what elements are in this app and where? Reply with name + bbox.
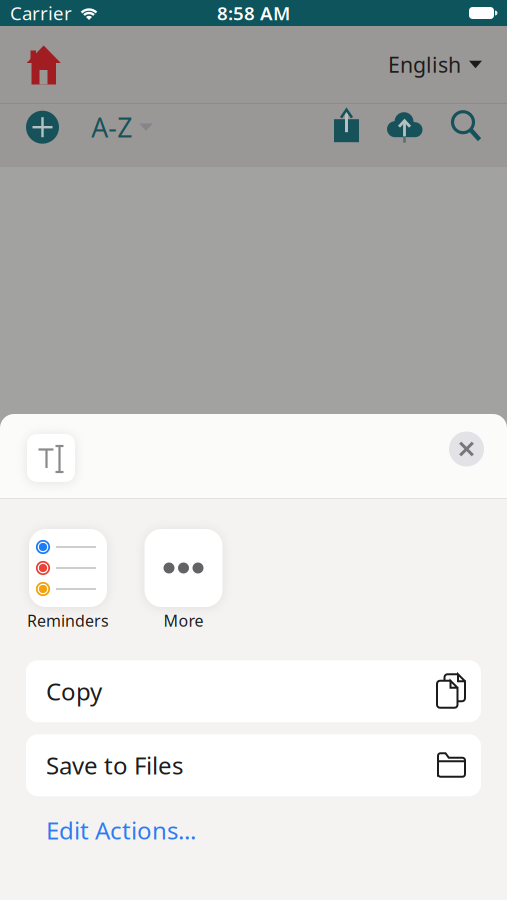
staticText: Reminders <box>27 610 109 631</box>
staticText: 8:58 AM <box>217 1 290 25</box>
button[interactable]: Reminders <box>27 529 109 631</box>
staticText: More <box>163 610 203 631</box>
staticText: Copy <box>46 675 102 707</box>
button[interactable]: Edit Actions... <box>46 814 196 846</box>
button[interactable]: Upload <box>386 111 424 143</box>
staticText: Edit Actions... <box>46 814 196 846</box>
staticText: A-Z <box>91 109 132 145</box>
staticText: Save to Files <box>46 749 183 781</box>
staticText: Carrier <box>10 1 72 25</box>
button[interactable]: Share <box>332 106 362 144</box>
staticText: English <box>388 50 461 79</box>
button[interactable]: Close <box>449 431 484 466</box>
button[interactable]: Sort <box>91 109 153 145</box>
button[interactable]: Add <box>26 111 59 144</box>
button[interactable]: Copy <box>26 660 481 722</box>
button[interactable]: Home <box>26 44 62 84</box>
button[interactable]: Language <box>388 50 482 79</box>
button[interactable]: More <box>144 529 222 631</box>
button[interactable]: Save to Files <box>26 734 481 796</box>
button[interactable]: Search <box>450 110 482 142</box>
